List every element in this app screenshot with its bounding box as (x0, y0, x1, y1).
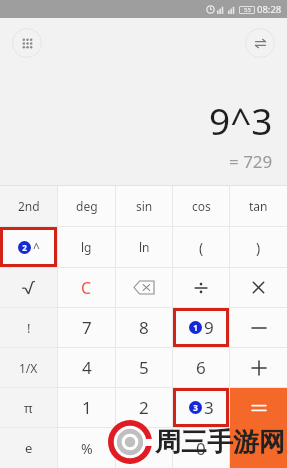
button[interactable]: 1 (58, 388, 115, 427)
staticText: 2 (139, 396, 149, 419)
button[interactable]: 4 (58, 348, 115, 387)
button[interactable]: ) (230, 227, 287, 267)
staticText: 9 (204, 316, 214, 339)
staticText: deg (76, 198, 98, 214)
staticText: 08:28 (257, 3, 282, 16)
staticText: 6 (196, 356, 206, 379)
button[interactable]: ! (0, 308, 57, 347)
button[interactable]: 0 (173, 428, 229, 468)
staticText: sin (136, 198, 153, 214)
staticText: π (24, 399, 33, 417)
staticText: 4 (82, 356, 92, 379)
button[interactable]: tan (230, 186, 287, 226)
staticText: 1 (193, 322, 198, 333)
staticText: C (81, 277, 92, 299)
staticText: ln (139, 239, 150, 255)
button[interactable]: cos (173, 186, 229, 226)
button[interactable]: . (116, 428, 172, 468)
button[interactable]: π (0, 388, 57, 427)
button[interactable]: 2nd (0, 186, 57, 226)
staticText: 2nd (18, 198, 40, 214)
staticText: lg (81, 239, 92, 255)
staticText: 55 (244, 6, 251, 14)
button[interactable]: lg (58, 227, 115, 267)
button[interactable] (230, 348, 287, 387)
button[interactable]: 8 (116, 308, 172, 347)
button[interactable] (230, 308, 287, 347)
button[interactable]: deg (58, 186, 115, 226)
staticText: ) (256, 238, 261, 257)
button[interactable]: sin (116, 186, 172, 226)
button[interactable]: Equals (230, 388, 287, 428)
button[interactable] (173, 268, 229, 307)
staticText: 7 (82, 316, 92, 339)
button[interactable]: 1 (173, 308, 229, 347)
button[interactable]: Menu (12, 28, 42, 58)
staticText: 3 (204, 396, 214, 419)
staticText: cos (192, 198, 211, 214)
staticText: 9^3 (209, 95, 273, 145)
button[interactable]: 7 (58, 308, 115, 347)
button[interactable]: Switch mode (245, 28, 275, 58)
staticText: e (25, 439, 33, 457)
button[interactable]: 6 (173, 348, 229, 387)
button[interactable] (230, 268, 287, 307)
staticText: 0 (196, 437, 206, 460)
button[interactable] (116, 268, 172, 307)
staticText: ( (199, 238, 204, 257)
button[interactable]: ( (173, 227, 229, 267)
button[interactable]: 2 (116, 388, 172, 427)
staticText: 1/X (19, 360, 38, 376)
button[interactable]: 3 (173, 388, 229, 427)
button[interactable]: 1/X (0, 348, 57, 387)
button[interactable]: e (0, 428, 57, 468)
button[interactable] (0, 268, 57, 307)
button[interactable]: 2 (0, 227, 57, 267)
button[interactable]: 5 (116, 348, 172, 387)
button[interactable]: Equals continued (230, 428, 287, 468)
button[interactable]: C (58, 268, 115, 307)
staticText: 3 (193, 402, 198, 413)
staticText: = 729 (229, 150, 273, 173)
staticText: 1 (82, 396, 92, 419)
button[interactable]: ln (116, 227, 172, 267)
staticText: % (81, 439, 93, 458)
staticText: 5 (139, 356, 149, 379)
staticText: . (142, 437, 147, 460)
staticText: ^ (33, 239, 40, 255)
button[interactable]: % (58, 428, 115, 468)
staticText: 周三手游网 (155, 426, 285, 459)
staticText: ! (27, 319, 31, 337)
staticText: 2 (22, 242, 27, 253)
staticText: 8 (139, 316, 149, 339)
staticText: tan (249, 198, 268, 214)
